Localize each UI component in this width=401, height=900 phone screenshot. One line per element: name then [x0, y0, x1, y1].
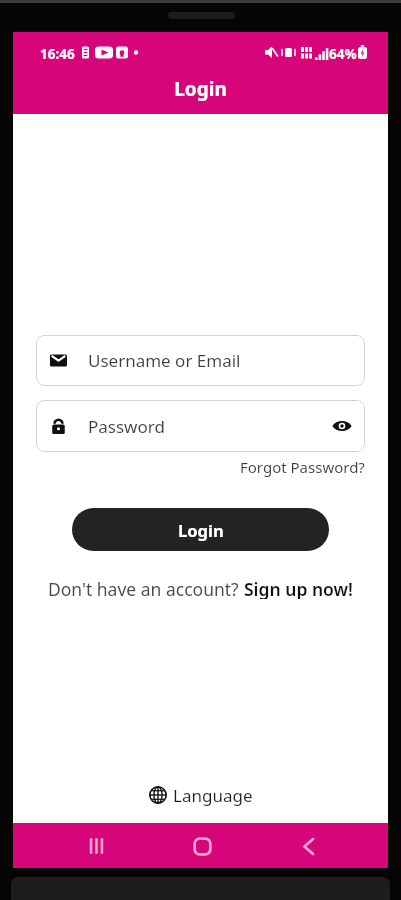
staticText: Password	[88, 415, 165, 438]
button[interactable]: Back	[288, 826, 328, 866]
button[interactable]: Language	[13, 782, 388, 808]
button[interactable]: Username or Email	[36, 335, 365, 386]
button[interactable]: Home	[182, 826, 222, 866]
button[interactable]: Forgot Password?	[240, 457, 365, 477]
staticText: Username or Email	[88, 349, 241, 372]
staticText: Login	[13, 76, 388, 102]
button[interactable]: Recent apps	[76, 826, 116, 866]
staticText: Don't have an account?	[48, 577, 244, 599]
staticText: 16:46	[40, 45, 75, 63]
button[interactable]: Login	[72, 508, 329, 551]
staticText: Login	[178, 519, 224, 541]
staticText: 64%	[329, 45, 357, 63]
button[interactable]: Show password	[323, 407, 361, 445]
button[interactable]: Sign up now!	[244, 577, 353, 599]
button[interactable]: Password	[36, 400, 365, 452]
staticText: Language	[173, 784, 253, 807]
